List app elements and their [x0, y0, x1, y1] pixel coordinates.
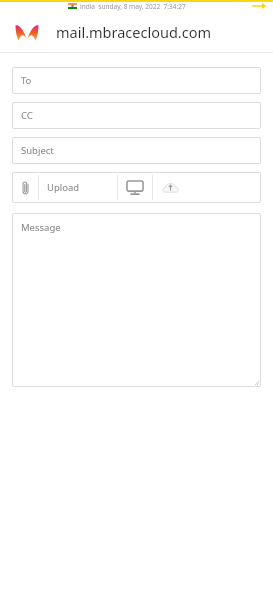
staticText: CC [21, 109, 33, 122]
staticText: To [21, 74, 32, 87]
button[interactable]: Upload from cloud [153, 172, 187, 203]
button[interactable]: Upload [39, 172, 117, 203]
button[interactable]: Attach file [12, 172, 38, 203]
button[interactable]: To [12, 67, 261, 94]
button[interactable]: Mbrace logo [12, 17, 42, 47]
staticText: Message [21, 221, 61, 234]
button[interactable]: Message [12, 213, 261, 387]
button[interactable]: Forward [251, 0, 267, 12]
button[interactable]: Subject [12, 137, 261, 164]
button[interactable]: Upload from computer [118, 172, 152, 203]
staticText: Subject [21, 144, 54, 157]
staticText: mail.mbracecloud.com [56, 22, 212, 42]
staticText: india sunday, 8 may, 2022 7:34:27 [80, 2, 186, 11]
button[interactable]: CC [12, 102, 261, 129]
staticText: Upload [47, 181, 80, 194]
